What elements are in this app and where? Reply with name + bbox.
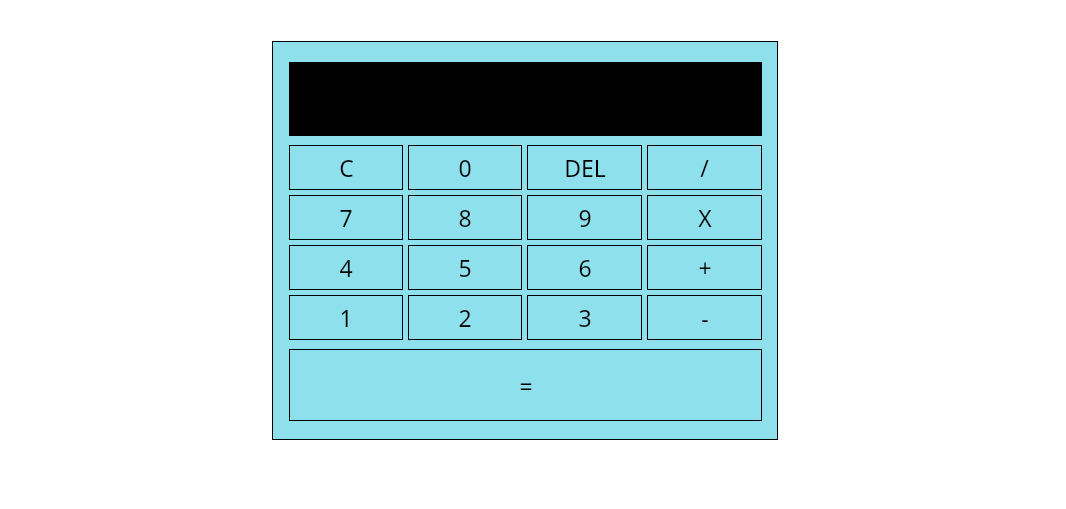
button[interactable]: 2 xyxy=(408,295,522,340)
staticText: 1 xyxy=(339,302,353,333)
button[interactable]: 4 xyxy=(289,245,403,290)
staticText: / xyxy=(700,152,709,183)
button[interactable]: 6 xyxy=(527,245,642,290)
button[interactable]: / xyxy=(647,145,762,190)
staticText: 9 xyxy=(578,202,592,233)
button[interactable]: 1 xyxy=(289,295,403,340)
button[interactable]: C xyxy=(289,145,403,190)
staticText: 3 xyxy=(578,302,592,333)
button[interactable]: X xyxy=(647,195,762,240)
button[interactable]: + xyxy=(647,245,762,290)
button[interactable]: DEL xyxy=(527,145,642,190)
button[interactable]: 3 xyxy=(527,295,642,340)
staticText: 0 xyxy=(458,152,472,183)
staticText: 6 xyxy=(578,252,592,283)
button[interactable]: 0 xyxy=(408,145,522,190)
staticText: = xyxy=(519,370,533,401)
staticText: X xyxy=(698,202,712,233)
staticText: C xyxy=(339,152,354,183)
staticText: + xyxy=(698,252,712,283)
staticText: DEL xyxy=(564,152,606,183)
staticText: - xyxy=(701,302,709,333)
button[interactable]: 7 xyxy=(289,195,403,240)
staticText: 7 xyxy=(339,202,353,233)
staticText: 4 xyxy=(339,252,353,283)
staticText: 5 xyxy=(458,252,472,283)
button[interactable]: - xyxy=(647,295,762,340)
staticText: 8 xyxy=(458,202,472,233)
button[interactable]: 9 xyxy=(527,195,642,240)
button[interactable]: 5 xyxy=(408,245,522,290)
button[interactable]: 8 xyxy=(408,195,522,240)
button[interactable]: = xyxy=(289,349,762,421)
staticText: 2 xyxy=(458,302,472,333)
